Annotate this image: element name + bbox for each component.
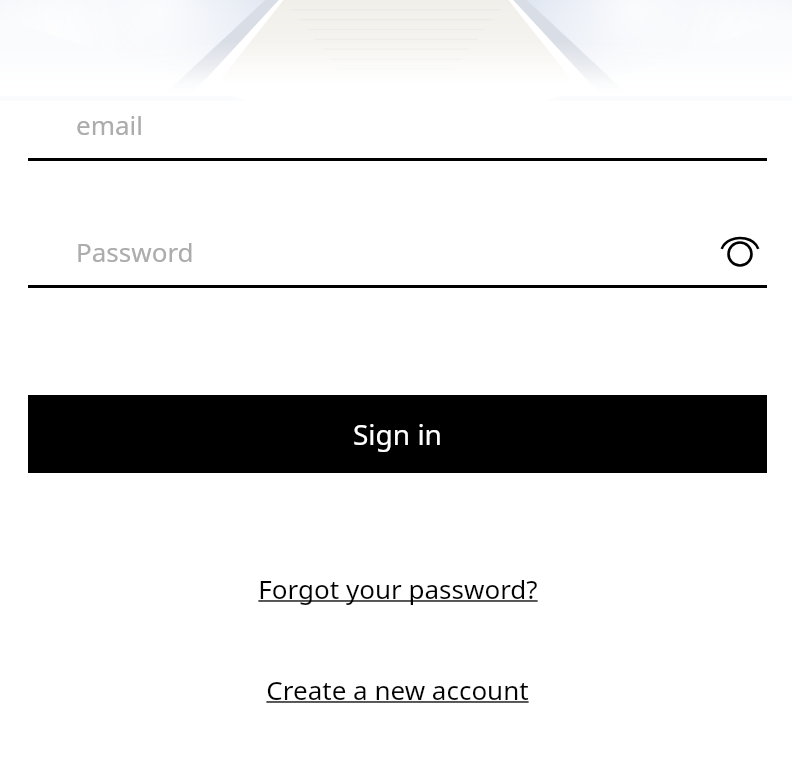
staticText: email <box>76 107 143 142</box>
button[interactable]: email <box>28 91 767 161</box>
button[interactable]: Sign in <box>28 395 767 473</box>
staticText: Create a new account <box>266 672 529 707</box>
button[interactable]: Create a new account <box>28 665 767 713</box>
staticText: Sign in <box>353 415 442 453</box>
button[interactable]: Password <box>28 218 767 288</box>
staticText: Forgot your password? <box>258 571 538 606</box>
button[interactable]: Show password <box>718 230 762 274</box>
staticText: Password <box>76 234 194 269</box>
button[interactable]: Forgot your password? <box>28 564 767 612</box>
